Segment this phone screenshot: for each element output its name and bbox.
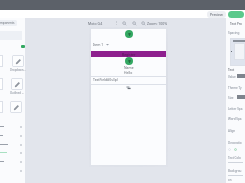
button[interactable]: Spacing	[230, 38, 245, 66]
button[interactable]	[0, 123, 25, 132]
button[interactable]: Zoom in	[141, 21, 146, 26]
button[interactable]: Register	[91, 51, 166, 57]
staticText: Hello	[124, 70, 133, 75]
staticText: Name	[124, 65, 134, 70]
button[interactable]	[0, 167, 25, 176]
staticText: Moto G4	[88, 21, 103, 26]
button[interactable]: Publish	[228, 11, 244, 18]
button[interactable]	[0, 149, 25, 158]
staticText: Spacing	[228, 31, 240, 35]
button[interactable]: Theme Ty	[228, 86, 245, 96]
button[interactable]: mponents	[0, 20, 17, 26]
button[interactable]: Text Colo	[228, 156, 245, 166]
staticText: Theme Ty	[228, 86, 242, 90]
staticText: Word Spa	[228, 117, 242, 121]
staticText: Outlined ...	[10, 91, 24, 95]
button[interactable]: More options	[114, 20, 119, 25]
button[interactable]: Preview	[207, 11, 226, 18]
button[interactable]: Zoom out	[132, 21, 137, 26]
staticText: TextField#0s3p)	[93, 77, 118, 82]
button[interactable]	[0, 141, 25, 150]
button[interactable]: Zoom: 100%	[147, 21, 168, 26]
button[interactable]: No decoration	[228, 148, 231, 151]
button[interactable]: Cursor	[125, 30, 133, 38]
staticText: Item 1	[93, 42, 104, 47]
staticText: Preview	[210, 12, 223, 17]
button[interactable]: Word Spa	[228, 117, 245, 127]
staticText: ⋮	[114, 20, 119, 25]
button[interactable]: Moto G4	[88, 21, 103, 26]
button[interactable]: Underline	[234, 148, 237, 151]
button[interactable]: Item 1	[93, 42, 109, 47]
staticText: Register	[122, 52, 136, 57]
staticText: Value	[228, 75, 236, 79]
staticText: mponents	[0, 21, 15, 25]
staticText: Text	[228, 68, 235, 72]
button[interactable]: Component	[11, 78, 23, 90]
button[interactable]	[0, 158, 25, 167]
button[interactable]: Align	[228, 129, 245, 139]
button[interactable]: Cursor	[125, 57, 133, 65]
staticText: Backgrou	[228, 169, 242, 173]
staticText: on	[228, 178, 232, 182]
staticText: Text Pro	[230, 22, 242, 26]
button[interactable]: Zoom to fit	[122, 21, 127, 26]
button[interactable]: Backgrou	[228, 169, 245, 179]
staticText: Align	[228, 129, 236, 133]
staticText: Decoratio	[228, 141, 242, 145]
button[interactable]: Letter Spa	[228, 107, 245, 117]
staticText: Letter Spa	[228, 107, 243, 111]
staticText: Size	[228, 96, 234, 100]
button[interactable]: Decoratio	[228, 141, 245, 151]
staticText: Dropdown...	[10, 68, 26, 72]
button[interactable]: Component	[12, 55, 24, 67]
button[interactable]	[0, 132, 25, 141]
button[interactable]: Value	[228, 75, 245, 85]
button[interactable]: Size	[228, 96, 245, 106]
staticText: Zoom: 100%	[147, 21, 168, 26]
staticText: Text Colo	[228, 156, 241, 160]
button[interactable]: Component	[10, 101, 22, 113]
